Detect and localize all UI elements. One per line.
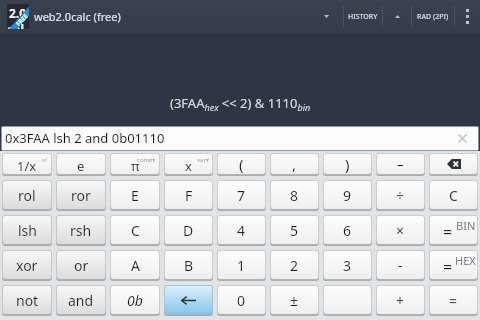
- staticText: not: [16, 291, 39, 310]
- button[interactable]: 8: [271, 181, 318, 209]
- button[interactable]: C: [111, 216, 159, 244]
- staticText: ror: [71, 186, 91, 205]
- button[interactable]: not: [3, 286, 51, 314]
- button[interactable]: lsh: [3, 216, 51, 244]
- staticText: ±: [290, 291, 299, 310]
- button[interactable]: RAD (2PI): [412, 0, 454, 33]
- button[interactable]: [324, 286, 371, 314]
- staticText: +: [396, 291, 405, 310]
- staticText: HEX: [455, 253, 476, 268]
- button[interactable]: Clear: [456, 132, 469, 145]
- staticText: (3FAAhex << 2) & 1110bin: [170, 94, 311, 113]
- button[interactable]: (: [218, 154, 265, 174]
- button[interactable]: ror: [57, 181, 105, 209]
- staticText: or: [74, 256, 89, 275]
- button[interactable]: –: [377, 154, 424, 174]
- staticText: lsh: [18, 221, 37, 240]
- button[interactable]: rol: [3, 181, 51, 209]
- staticText: 2.0: [9, 5, 27, 21]
- staticText: FREE: [14, 12, 29, 28]
- button[interactable]: x: [165, 154, 212, 174]
- staticText: var▾: [197, 156, 209, 164]
- staticText: 0: [237, 291, 246, 310]
- staticText: A: [131, 256, 140, 275]
- button[interactable]: Previous expression: [310, 0, 343, 33]
- button[interactable]: E: [111, 181, 159, 209]
- staticText: and: [68, 291, 94, 310]
- button[interactable]: ±: [271, 286, 318, 314]
- button[interactable]: xor: [3, 251, 51, 279]
- button[interactable]: 5: [271, 216, 318, 244]
- staticText: 1/x: [17, 157, 37, 174]
- staticText: 8: [290, 186, 299, 205]
- button[interactable]: -: [377, 251, 424, 279]
- staticText: 5: [290, 221, 299, 240]
- staticText: calc: [7, 21, 29, 29]
- staticText: xor: [16, 256, 38, 275]
- staticText: 9: [343, 186, 352, 205]
- button[interactable]: More options: [455, 0, 480, 33]
- button[interactable]: 0b: [111, 286, 159, 314]
- button[interactable]: 6: [324, 216, 371, 244]
- staticText: 0x3FAA lsh 2 and 0b01110: [5, 129, 165, 147]
- staticText: HISTORY: [348, 12, 378, 22]
- staticText: 7: [237, 186, 246, 205]
- button[interactable]: =: [430, 216, 477, 244]
- button[interactable]: e: [57, 154, 105, 174]
- staticText: 6: [343, 221, 352, 240]
- staticText: 3: [343, 256, 352, 275]
- button[interactable]: rsh: [57, 216, 105, 244]
- staticText: =: [449, 291, 458, 310]
- staticText: C: [449, 186, 458, 205]
- button[interactable]: ,: [271, 154, 318, 174]
- button[interactable]: +: [377, 286, 424, 314]
- staticText: -: [398, 256, 403, 275]
- button[interactable]: ): [324, 154, 371, 174]
- staticText: RAD (2PI): [417, 12, 449, 22]
- button[interactable]: 4: [218, 216, 265, 244]
- button[interactable]: ×: [377, 216, 424, 244]
- staticText: ): [345, 154, 350, 174]
- staticText: rsh: [70, 221, 92, 240]
- staticText: BIN: [456, 218, 476, 233]
- button[interactable]: or: [57, 251, 105, 279]
- button[interactable]: 1/x: [3, 154, 51, 174]
- button[interactable]: F: [165, 181, 212, 209]
- staticText: =: [443, 256, 453, 278]
- staticText: ×: [396, 221, 405, 240]
- button[interactable]: Backspace: [430, 154, 477, 174]
- button[interactable]: HISTORY: [344, 0, 382, 33]
- other: Backspace: [447, 159, 461, 169]
- staticText: web2.0calc (free): [34, 9, 121, 24]
- button[interactable]: Next expression: [383, 0, 411, 33]
- button[interactable]: 1: [218, 251, 265, 279]
- button[interactable]: A: [111, 251, 159, 279]
- button[interactable]: π: [111, 154, 159, 174]
- button[interactable]: 7: [218, 181, 265, 209]
- button[interactable]: 3: [324, 251, 371, 279]
- button[interactable]: and: [57, 286, 105, 314]
- button[interactable]: D: [165, 216, 212, 244]
- staticText: 1: [237, 256, 246, 275]
- button[interactable]: C: [430, 181, 477, 209]
- staticText: const▾: [137, 156, 156, 164]
- staticText: F: [185, 186, 193, 205]
- button[interactable]: =: [430, 251, 477, 279]
- staticText: C: [131, 221, 140, 240]
- staticText: x: [185, 157, 192, 174]
- staticText: 0b: [127, 291, 143, 310]
- button[interactable]: Left: [165, 286, 212, 314]
- button[interactable]: 9: [324, 181, 371, 209]
- button[interactable]: ÷: [377, 181, 424, 209]
- staticText: B: [184, 256, 194, 275]
- button[interactable]: B: [165, 251, 212, 279]
- button[interactable]: =: [430, 286, 477, 314]
- other: Left: [181, 296, 196, 305]
- staticText: e: [77, 157, 85, 174]
- button[interactable]: 2: [271, 251, 318, 279]
- staticText: E: [131, 186, 139, 205]
- staticText: rol: [18, 186, 36, 205]
- staticText: ÷: [396, 186, 405, 205]
- button[interactable]: 0: [218, 286, 265, 314]
- staticText: xʸ: [42, 156, 48, 164]
